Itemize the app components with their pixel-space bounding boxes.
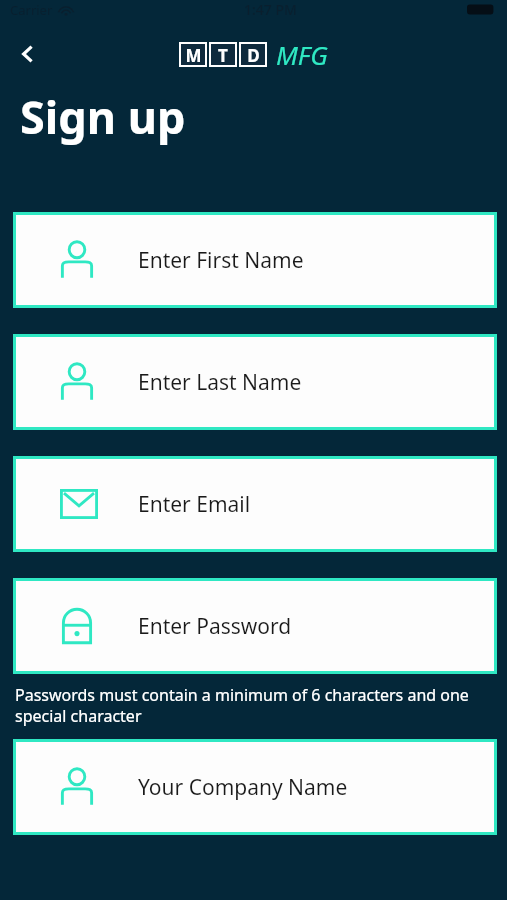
staticText: Enter Password <box>138 612 292 641</box>
staticText: Enter First Name <box>138 246 304 275</box>
staticText: 1:47 PM <box>244 0 297 19</box>
staticText: Sign up <box>20 86 186 147</box>
staticText: Enter Last Name <box>138 368 302 397</box>
button[interactable]: Enter Last Name <box>16 337 494 427</box>
button[interactable]: Back <box>6 32 50 76</box>
button[interactable]: Enter Email <box>16 459 494 549</box>
button[interactable]: Enter First Name <box>16 215 494 305</box>
staticText: T <box>218 44 228 65</box>
staticText: M <box>185 44 202 65</box>
staticText: D <box>247 44 260 65</box>
staticText: MFG <box>276 37 328 72</box>
staticText: Your Company Name <box>138 773 348 802</box>
staticText: Enter Email <box>138 490 251 519</box>
button[interactable]: Enter Password <box>16 581 494 671</box>
staticText: Passwords must contain a minimum of 6 ch… <box>15 684 477 727</box>
button[interactable]: Your Company Name <box>16 742 494 832</box>
